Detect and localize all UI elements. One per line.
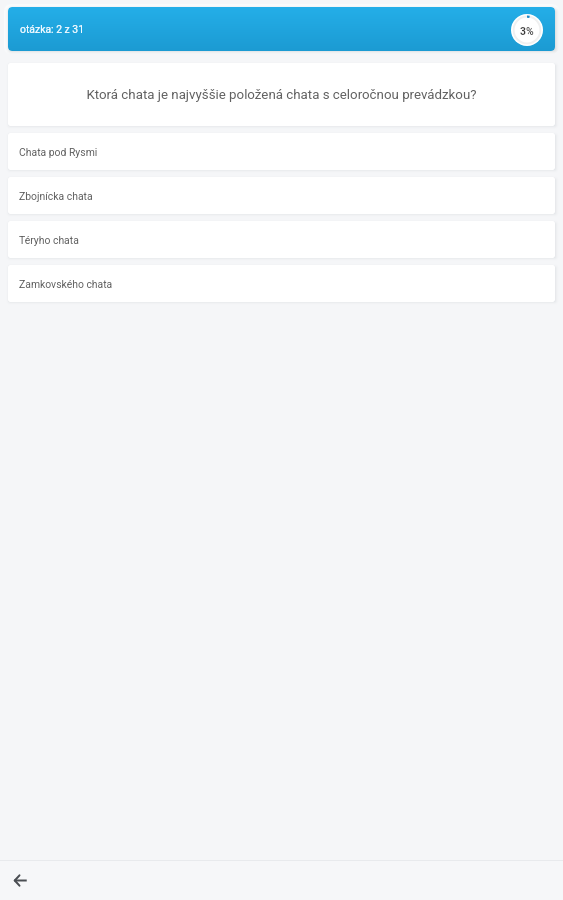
button[interactable]: Back [3, 863, 37, 897]
staticText: Zamkovského chata [19, 278, 113, 290]
button[interactable]: Zamkovského chata [8, 265, 555, 302]
staticText: Zbojnícka chata [19, 190, 93, 202]
button[interactable]: Zbojnícka chata [8, 177, 555, 214]
button[interactable]: Chata pod Rysmi [8, 133, 555, 170]
staticText: Chata pod Rysmi [19, 146, 98, 158]
staticText: Téryho chata [19, 234, 79, 246]
button[interactable]: Téryho chata [8, 221, 555, 258]
staticText: Ktorá chata je najvyššie položená chata … [86, 87, 477, 103]
staticText: otázka: 2 z 31 [20, 23, 84, 35]
staticText: 3% [520, 25, 534, 37]
